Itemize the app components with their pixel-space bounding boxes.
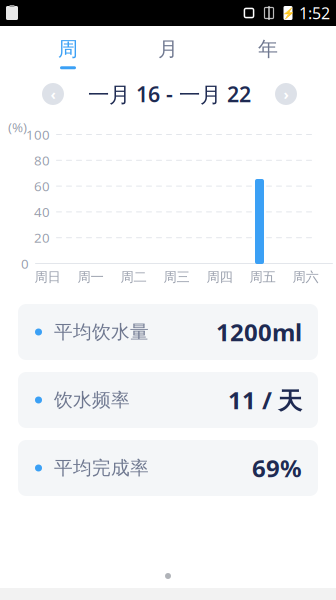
staticText: 20 [34,229,50,246]
staticText: 周二 [120,269,146,285]
button[interactable]: 平均饮水量 [18,304,318,360]
button[interactable]: 周 [18,34,118,72]
staticText: (%) [8,118,27,136]
staticText: 周 [58,37,78,61]
staticText: 11 / 天 [228,384,302,416]
staticText: ⚡ [281,7,294,19]
button[interactable]: Previous week [38,79,68,109]
staticText: 60 [34,177,50,195]
staticText: 1:52 [299,2,330,24]
button[interactable]: 年 [218,34,318,72]
staticText: › [283,84,288,104]
staticText: ‹ [50,84,55,104]
button[interactable]: Next week [271,79,301,109]
button[interactable]: 月 [118,34,218,72]
staticText: 100 [26,126,50,143]
staticText: 周一 [77,269,103,285]
staticText: 周三 [163,269,189,285]
staticText: 周五 [249,269,275,285]
staticText: 月 [158,37,178,61]
staticText: 0 [21,255,29,272]
staticText: 1200ml [216,316,302,348]
staticText: 周四 [206,269,232,285]
staticText: 周日 [34,269,60,285]
button[interactable]: 饮水频率 [18,372,318,428]
staticText: 平均完成率 [54,456,149,479]
staticText: 80 [34,151,50,169]
staticText: 平均饮水量 [54,320,149,343]
staticText: 一月 16 - 一月 22 [88,80,251,108]
staticText: 69% [252,452,302,484]
staticText: 40 [34,203,50,221]
staticText: 饮水频率 [54,388,130,411]
button[interactable]: 平均完成率 [18,440,318,496]
staticText: 周六 [292,269,318,285]
staticText: 年 [258,37,278,61]
